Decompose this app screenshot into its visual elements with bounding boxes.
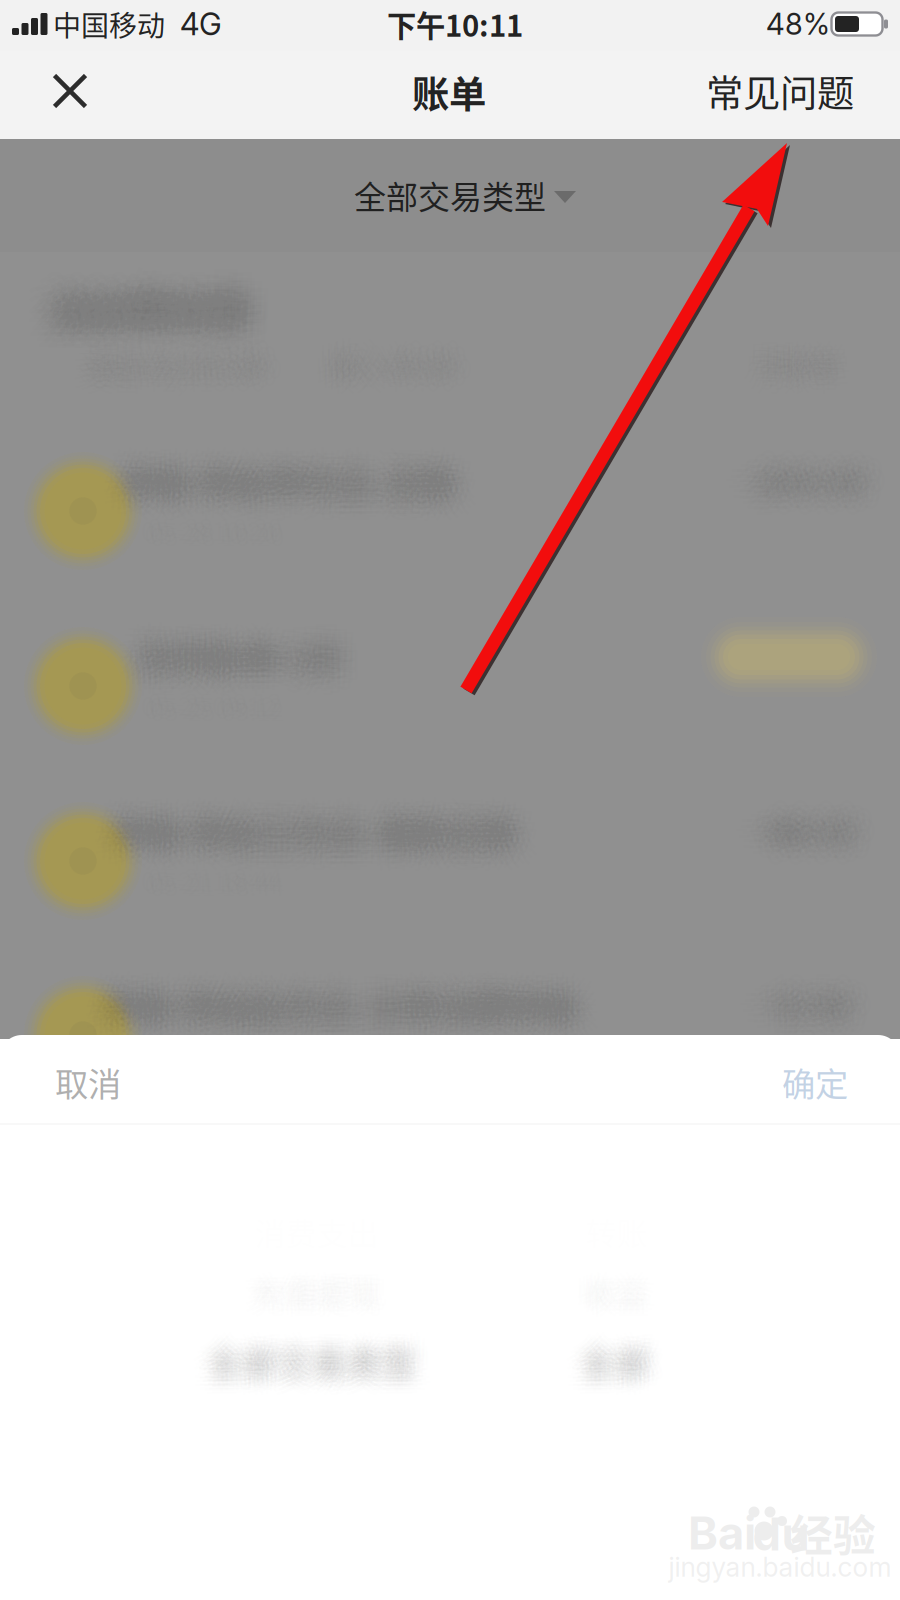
staticText: -12.50 [774, 979, 869, 1019]
staticText: 转账 转给李先生-还款 [88, 467, 423, 517]
staticText: 转账 转给王先生-借款还款 [100, 774, 505, 824]
staticText: -200.00 [737, 486, 860, 527]
staticText: -200.00 [777, 454, 900, 494]
button[interactable]: 取消 [37, 1044, 139, 1120]
staticText: -200.00 [767, 449, 890, 490]
button[interactable]: 关闭 [15, 47, 125, 135]
staticText: -200.00 [731, 476, 854, 516]
staticText: -200.00 [724, 460, 847, 500]
staticText: 全部 [591, 1332, 661, 1382]
staticText: 全部交易类型 [214, 1325, 424, 1376]
staticText: -200.00 [748, 472, 871, 513]
staticText: 转账 转给赵先生-日常消费转账 [115, 1012, 590, 1062]
staticText: 转账 转给赵先生-日常消费转账 [70, 971, 545, 1021]
staticText: -66.00 [772, 787, 875, 827]
button[interactable]: 常见问题 [684, 38, 876, 144]
staticText: -66.00 [766, 809, 869, 849]
staticText: 转账 转给王先生-借款还款 [96, 784, 501, 834]
staticText: -12.50 [762, 1004, 857, 1045]
staticText: 花呗账单-5月 [151, 658, 357, 708]
staticText: -66.00 [758, 796, 861, 837]
staticText: -200.00 [725, 472, 848, 512]
staticText: 2020年05月 [25, 253, 223, 305]
staticText: 支出 ¥2,415.80 [104, 327, 283, 365]
staticText: -66.00 [723, 807, 826, 848]
staticText: -66.00 [775, 817, 878, 858]
staticText: -66.00 [763, 832, 866, 873]
staticText: 2020年05月 [63, 271, 261, 323]
staticText: 转账 转给王先生-借款还款 [90, 787, 495, 837]
staticText: -12.50 [779, 967, 874, 1007]
staticText: 花呗账单-5月 [155, 607, 361, 657]
staticText: -66.00 [777, 799, 880, 840]
staticText: 05-25 09:12 [137, 672, 271, 708]
staticText: 全部 [573, 1328, 643, 1379]
staticText: 全部 [568, 1353, 638, 1403]
button[interactable]: 确定 [764, 1044, 866, 1120]
staticText: 转账 转给李先生-还款 [105, 434, 440, 484]
staticText: 转账 转给李先生-还款 [156, 460, 491, 511]
staticText: -12.50 [729, 970, 824, 1010]
staticText: 全部交易类型 [193, 1357, 403, 1408]
staticText: 花呗账单-5月 [141, 642, 347, 693]
staticText: 转账 转给李先生-还款 [115, 467, 450, 517]
staticText: 05-28 10:20 [153, 482, 287, 519]
staticText: 全部交易类型 [209, 1337, 419, 1387]
staticText: 05-28 10:20 [143, 492, 277, 529]
staticText: 花呗账单-5月 [122, 627, 328, 677]
staticText: 花呗账单-5月 [110, 653, 316, 703]
staticText: 转账 转给王先生-借款还款 [115, 776, 520, 826]
staticText: 全部交易类型 [202, 1360, 412, 1410]
staticText: 全部 [572, 1319, 642, 1370]
staticText: 转账 转给李先生-还款 [99, 460, 434, 510]
staticText: 支出 ¥2,415.80 [88, 325, 267, 363]
staticText: 全部 [599, 1348, 669, 1398]
staticText: 转账 转给赵先生-日常消费转账 [101, 1009, 576, 1059]
staticText: -200.00 [740, 454, 863, 494]
staticText: -200.00 [735, 450, 858, 491]
